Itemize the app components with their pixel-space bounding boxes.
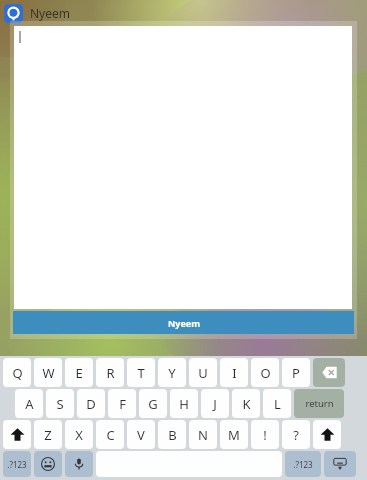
staticText: B [168, 426, 177, 444]
staticText: D [86, 395, 96, 413]
button[interactable]: L [263, 389, 291, 418]
staticText: Q [12, 364, 23, 382]
staticText: Nyeem [168, 317, 200, 329]
button[interactable]: Z [34, 420, 62, 449]
button[interactable]: X [65, 420, 93, 449]
button[interactable]: U [189, 358, 217, 387]
staticText: Y [168, 364, 176, 382]
button[interactable]: R [96, 358, 124, 387]
button[interactable]: I [220, 358, 248, 387]
button[interactable]: O [251, 358, 279, 387]
button[interactable]: K [232, 389, 260, 418]
staticText: .?123 [293, 459, 313, 470]
button[interactable]: M [220, 420, 248, 449]
button[interactable]: Shift [3, 420, 31, 449]
button[interactable]: Backspace [313, 358, 345, 387]
button[interactable]: ? [282, 420, 310, 449]
staticText: G [148, 395, 158, 413]
staticText: N [198, 426, 208, 444]
staticText: R [106, 364, 115, 382]
button[interactable]: ! [251, 420, 279, 449]
button[interactable]: Shift [313, 420, 341, 449]
button[interactable]: V [127, 420, 155, 449]
button[interactable]: H [170, 389, 198, 418]
button[interactable]: return [294, 389, 344, 418]
staticText: S [56, 395, 64, 413]
button[interactable]: Emoji [34, 451, 62, 477]
staticText: A [25, 395, 34, 413]
staticText: F [119, 395, 126, 413]
button[interactable]: G [139, 389, 167, 418]
staticText: P [292, 364, 300, 382]
staticText: ? [293, 426, 299, 444]
button[interactable]: N [189, 420, 217, 449]
button[interactable]: J [201, 389, 229, 418]
button[interactable]: D [77, 389, 105, 418]
button[interactable]: Q [3, 358, 31, 387]
button[interactable]: Voice input [65, 451, 93, 477]
staticText: ! [263, 426, 267, 444]
button[interactable]: Y [158, 358, 186, 387]
staticText: T [137, 364, 145, 382]
staticText: M [228, 426, 240, 444]
staticText: return [305, 397, 334, 410]
staticText: O [260, 364, 271, 382]
button[interactable]: S [46, 389, 74, 418]
staticText: J [213, 395, 217, 413]
staticText: Z [44, 426, 52, 444]
staticText: E [75, 364, 83, 382]
staticText: H [179, 395, 189, 413]
button[interactable]: C [96, 420, 124, 449]
button[interactable]: T [127, 358, 155, 387]
staticText: C [106, 426, 115, 444]
staticText: I [232, 364, 237, 382]
button[interactable]: F [108, 389, 136, 418]
button[interactable]: .?123 [3, 451, 31, 477]
button[interactable]: B [158, 420, 186, 449]
staticText: Nyeem [30, 5, 70, 21]
staticText: W [42, 364, 55, 382]
staticText: U [198, 364, 208, 382]
button[interactable]: P [282, 358, 310, 387]
staticText: L [274, 395, 281, 413]
button[interactable]: A [15, 389, 43, 418]
staticText: .?123 [7, 459, 27, 470]
button[interactable]: E [65, 358, 93, 387]
button[interactable]: Hide keyboard [324, 451, 356, 477]
staticText: X [75, 426, 83, 444]
button[interactable]: Nyeem [13, 311, 354, 334]
button[interactable]: W [34, 358, 62, 387]
staticText: K [242, 395, 251, 413]
staticText: V [137, 426, 145, 444]
button[interactable]: .?123 [285, 451, 321, 477]
